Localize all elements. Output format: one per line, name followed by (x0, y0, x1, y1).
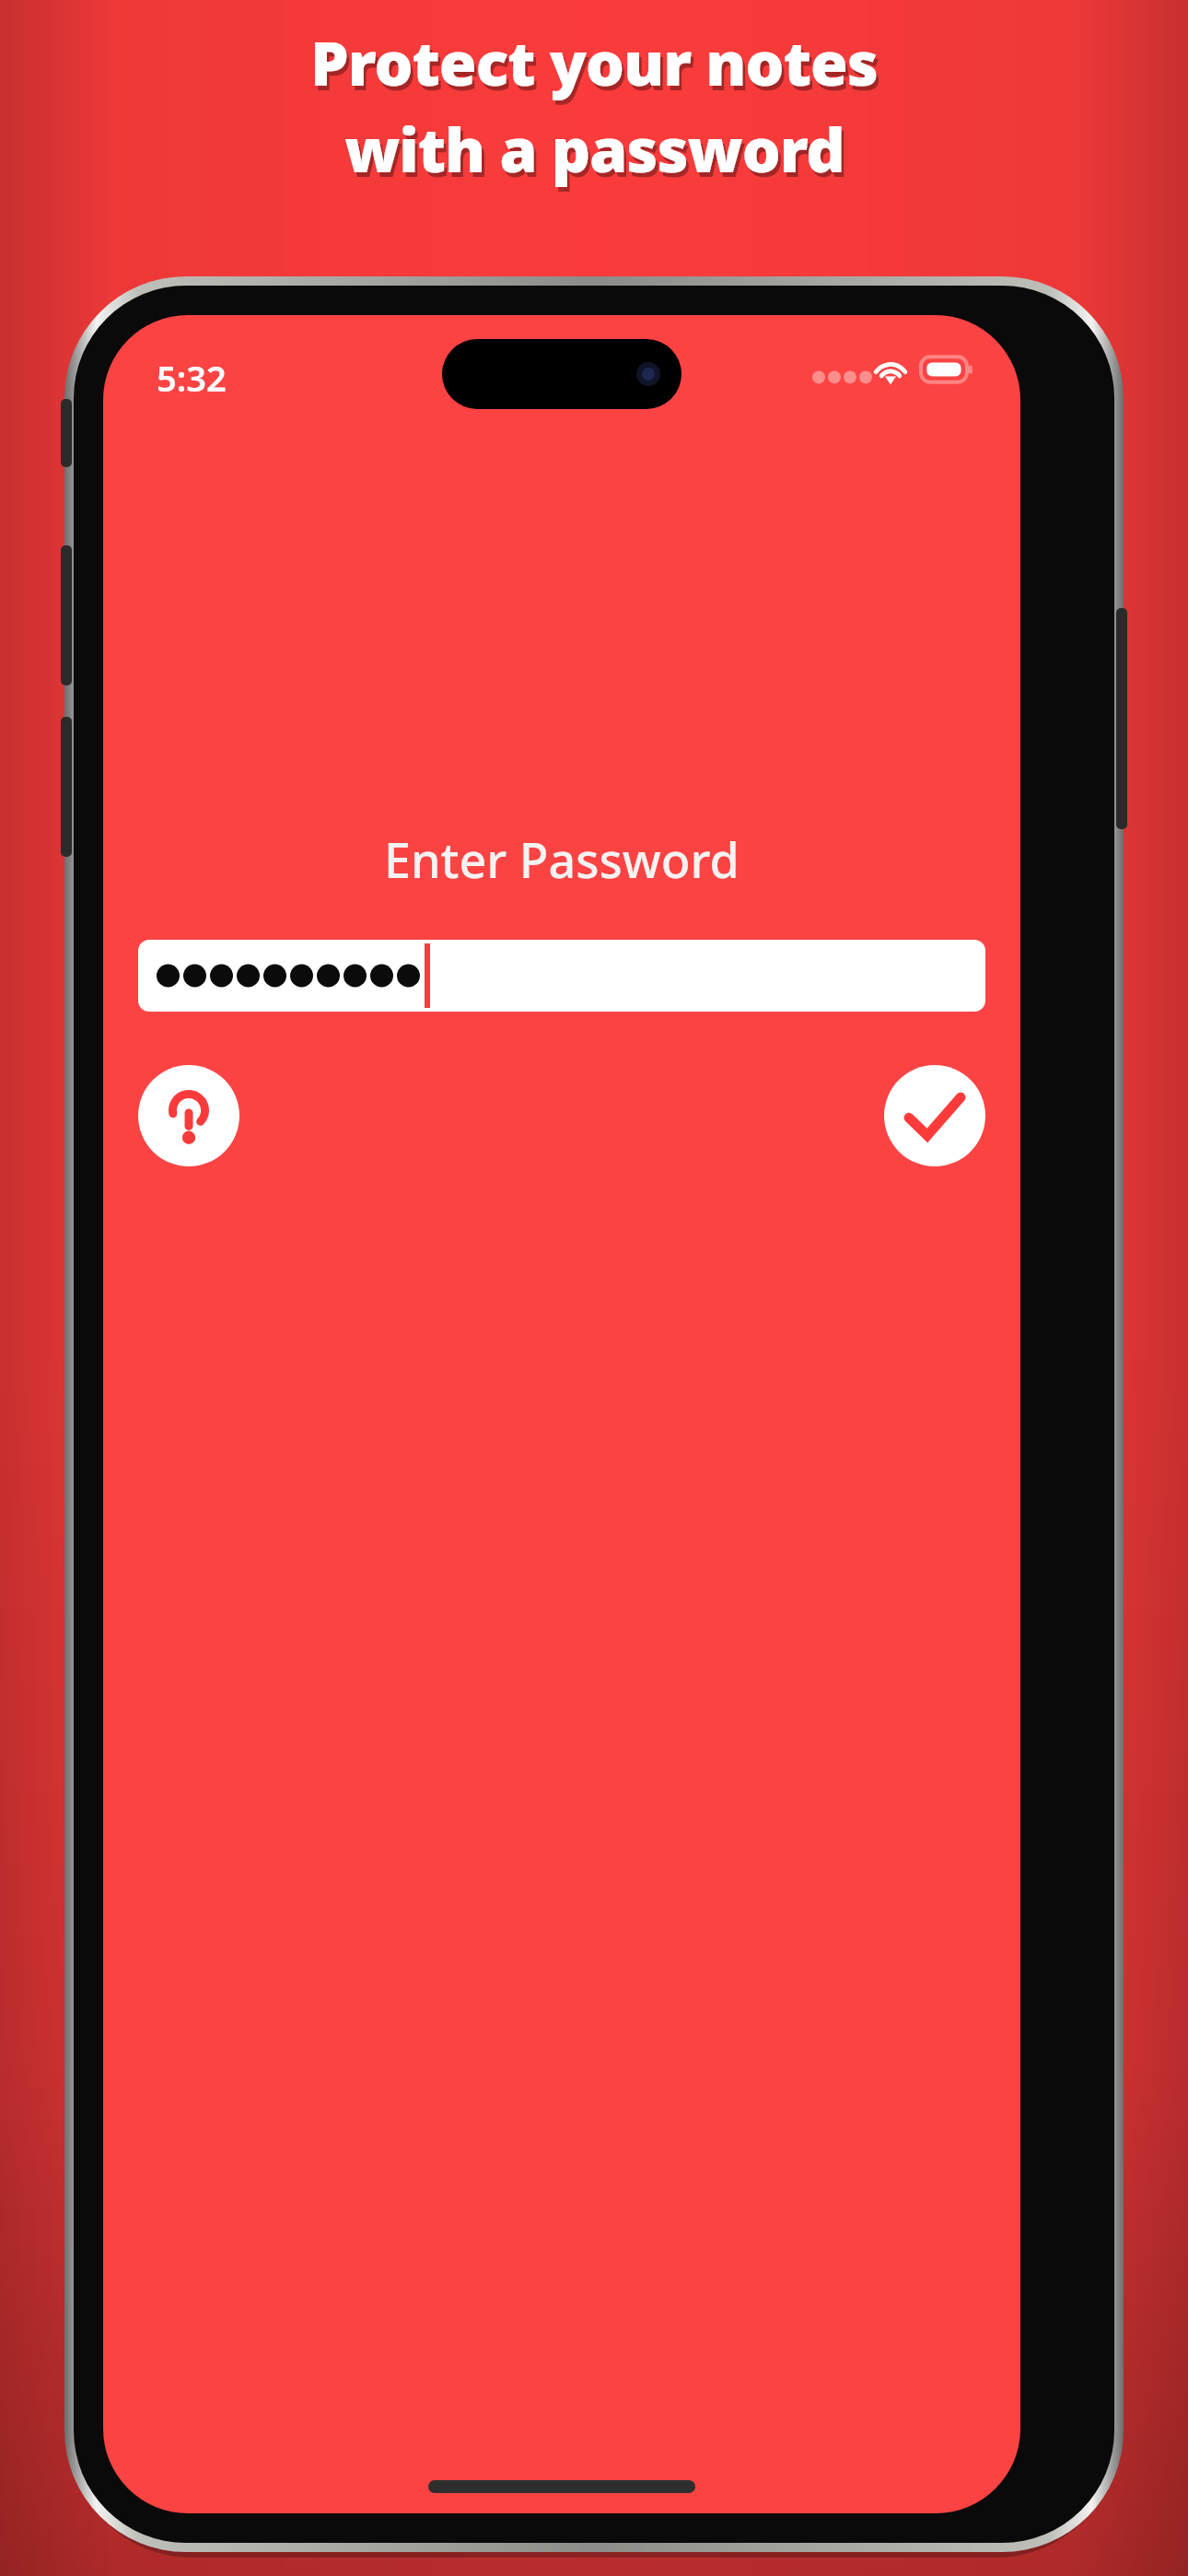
button[interactable] (138, 940, 985, 1012)
staticText: Enter Password (384, 826, 740, 892)
button[interactable]: Confirm password (884, 1065, 985, 1166)
button[interactable]: Help (138, 1065, 239, 1166)
staticText: with a password (347, 111, 847, 194)
staticText: Protect your notes (310, 20, 878, 103)
staticText: 5:32 (157, 354, 227, 402)
staticText: with a password (344, 107, 844, 190)
staticText: Protect your notes (313, 25, 880, 108)
